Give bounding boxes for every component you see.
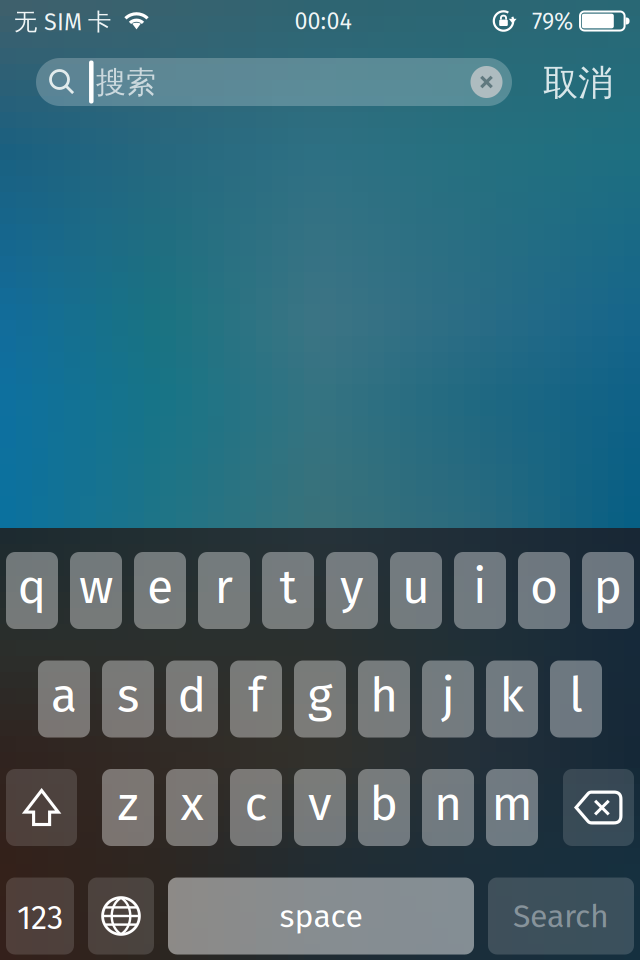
button[interactable]: m <box>486 769 538 846</box>
button[interactable]: g <box>294 660 346 737</box>
staticText: h <box>370 667 398 724</box>
button[interactable]: c <box>230 769 282 846</box>
button[interactable]: 123 <box>6 877 74 954</box>
button[interactable]: v <box>294 769 346 846</box>
button[interactable]: b <box>358 769 410 846</box>
staticText: r <box>214 558 233 616</box>
staticText: b <box>369 775 398 833</box>
button[interactable]: l <box>550 660 602 737</box>
button[interactable]: z <box>102 769 154 846</box>
button[interactable]: r <box>198 552 250 629</box>
button[interactable]: x <box>166 769 218 846</box>
staticText: i <box>473 558 487 616</box>
staticText: 123 <box>17 898 63 938</box>
staticText: g <box>307 667 332 724</box>
staticText: Search <box>513 897 609 936</box>
button[interactable]: Search <box>488 877 634 954</box>
staticText: u <box>402 558 430 616</box>
button[interactable]: s <box>102 660 154 737</box>
button[interactable]: p <box>582 552 634 629</box>
staticText: d <box>177 667 206 724</box>
staticText: m <box>491 775 532 833</box>
staticText: q <box>17 558 46 616</box>
button[interactable]: space <box>168 877 474 954</box>
button[interactable]: q <box>6 552 58 629</box>
staticText: c <box>244 775 267 833</box>
button[interactable]: y <box>326 552 378 629</box>
staticText: p <box>593 558 622 616</box>
staticText: 搜索 <box>96 64 156 101</box>
button[interactable]: u <box>390 552 442 629</box>
button[interactable]: f <box>230 660 282 737</box>
staticText: 无 SIM 卡 <box>14 7 111 37</box>
staticText: s <box>117 667 139 724</box>
button[interactable]: e <box>134 552 186 629</box>
button[interactable]: a <box>38 660 90 737</box>
staticText: v <box>308 775 332 833</box>
staticText: j <box>441 667 454 724</box>
staticText: space <box>279 897 362 936</box>
staticText: a <box>51 667 77 724</box>
button[interactable]: Delete <box>563 769 634 846</box>
button[interactable]: 搜索 <box>36 58 512 106</box>
staticText: k <box>499 667 524 724</box>
staticText: 取消 <box>543 61 613 105</box>
staticText: 00:04 <box>294 7 351 35</box>
staticText: e <box>147 558 173 616</box>
button[interactable]: j <box>422 660 474 737</box>
staticText: y <box>340 558 364 616</box>
button[interactable]: 取消 <box>526 55 630 111</box>
button[interactable]: k <box>486 660 538 737</box>
button[interactable]: Shift <box>6 769 77 846</box>
staticText: x <box>180 775 203 833</box>
staticText: o <box>530 558 558 616</box>
staticText: t <box>279 558 296 616</box>
staticText: w <box>79 558 113 616</box>
button[interactable]: d <box>166 660 218 737</box>
button[interactable]: Next keyboard <box>88 877 154 954</box>
button[interactable]: i <box>454 552 506 629</box>
button[interactable]: 清除 <box>470 66 502 98</box>
button[interactable]: t <box>262 552 314 629</box>
staticText: n <box>434 775 462 833</box>
staticText: l <box>569 667 583 724</box>
button[interactable]: o <box>518 552 570 629</box>
staticText: 79% <box>532 8 573 36</box>
staticText: f <box>248 667 264 724</box>
button[interactable]: h <box>358 660 410 737</box>
button[interactable]: w <box>70 552 122 629</box>
staticText: z <box>117 775 138 833</box>
button[interactable]: n <box>422 769 474 846</box>
